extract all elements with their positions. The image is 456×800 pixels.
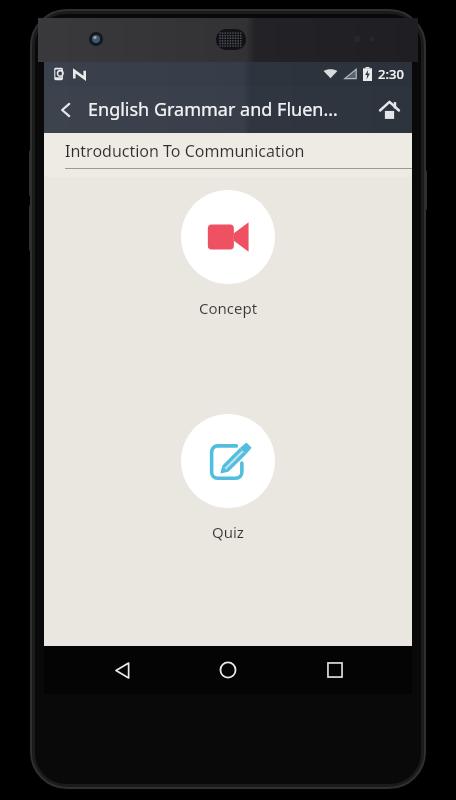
staticText: Introduction To Communication (65, 140, 305, 162)
button[interactable]: Home (199, 646, 257, 694)
button[interactable]: Concept video (181, 190, 275, 284)
button[interactable]: Back (93, 646, 151, 694)
button[interactable]: Back (44, 88, 88, 132)
button[interactable]: Quiz (181, 414, 275, 508)
staticText: English Grammar and Fluen… (88, 97, 338, 122)
staticText: Concept (199, 298, 258, 318)
button[interactable]: Recent apps (306, 646, 364, 694)
staticText: Quiz (212, 522, 244, 542)
button[interactable]: Home (366, 87, 412, 133)
staticText: 2:30 (378, 65, 404, 83)
